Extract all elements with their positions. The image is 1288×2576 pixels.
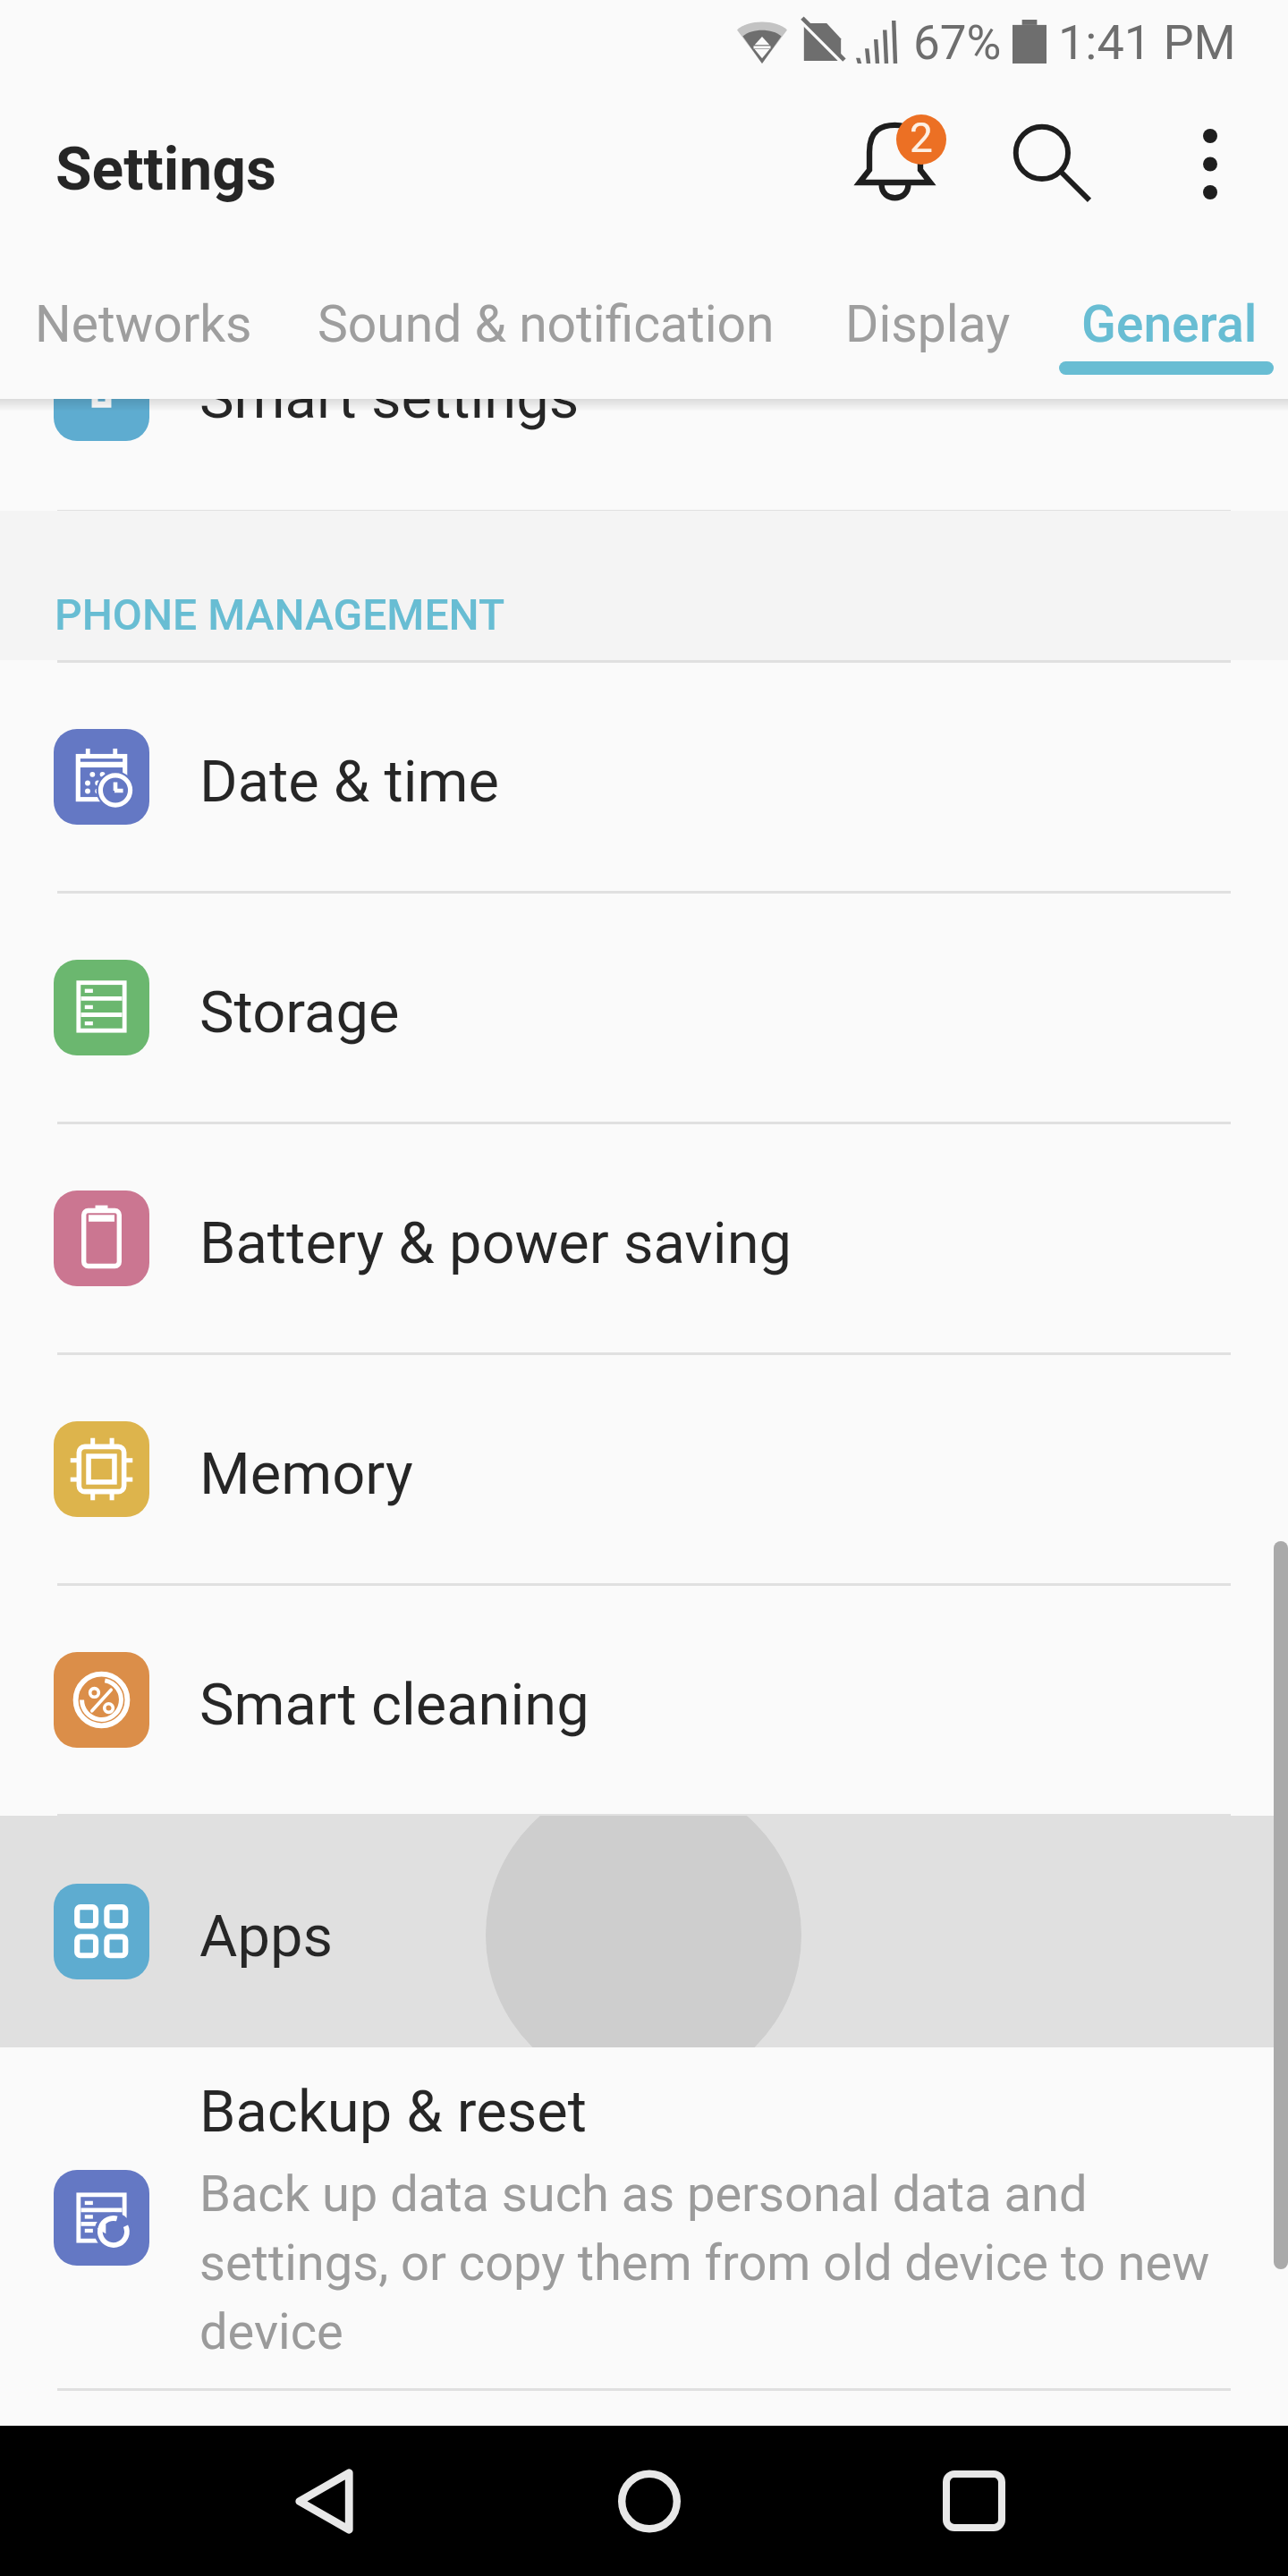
staticText: Storage — [199, 979, 400, 1046]
staticText: 1:41 PM — [1058, 14, 1236, 71]
button[interactable]: Memory — [0, 1355, 1288, 1583]
staticText: Smart cleaning — [199, 1671, 589, 1739]
staticText: Sound & notification — [318, 294, 775, 354]
staticText: Memory — [199, 1440, 413, 1508]
staticText: Date & time — [199, 748, 499, 816]
button[interactable]: More options — [1152, 104, 1268, 238]
button[interactable]: Apps — [0, 1816, 1288, 2047]
button[interactable]: General — [1050, 261, 1288, 386]
staticText: Smart settings — [199, 399, 580, 432]
button[interactable]: Backup & reset — [0, 2047, 1288, 2388]
staticText: Settings — [55, 135, 276, 204]
staticText: Backup & reset — [199, 2078, 588, 2146]
button[interactable]: Search — [993, 104, 1114, 238]
button[interactable]: Date & time — [0, 663, 1288, 891]
button[interactable]: Recent apps — [871, 2426, 1077, 2576]
button[interactable]: Home — [547, 2426, 752, 2576]
staticText: PHONE MANAGEMENT — [55, 589, 505, 640]
staticText: Networks — [35, 294, 252, 354]
button[interactable]: Battery & power saving — [0, 1124, 1288, 1352]
staticText: 67% — [913, 15, 1002, 71]
button[interactable]: Smart settings — [0, 399, 1288, 507]
staticText: Battery & power saving — [199, 1209, 792, 1277]
button[interactable]: Networks — [0, 261, 286, 386]
staticText: Display — [845, 294, 1011, 354]
button[interactable]: Back — [222, 2426, 428, 2576]
button[interactable]: Sound & notification — [286, 261, 805, 386]
staticText: General — [1081, 294, 1258, 354]
staticText: Back up data such as personal data and s… — [199, 2165, 1228, 2361]
staticText: Apps — [199, 1902, 333, 1970]
button[interactable]: Storage — [0, 894, 1288, 1122]
button[interactable]: Smart cleaning — [0, 1586, 1288, 1814]
button[interactable]: Display — [805, 261, 1050, 386]
staticText: 2 — [910, 114, 933, 162]
button[interactable]: Notifications — [832, 104, 964, 234]
